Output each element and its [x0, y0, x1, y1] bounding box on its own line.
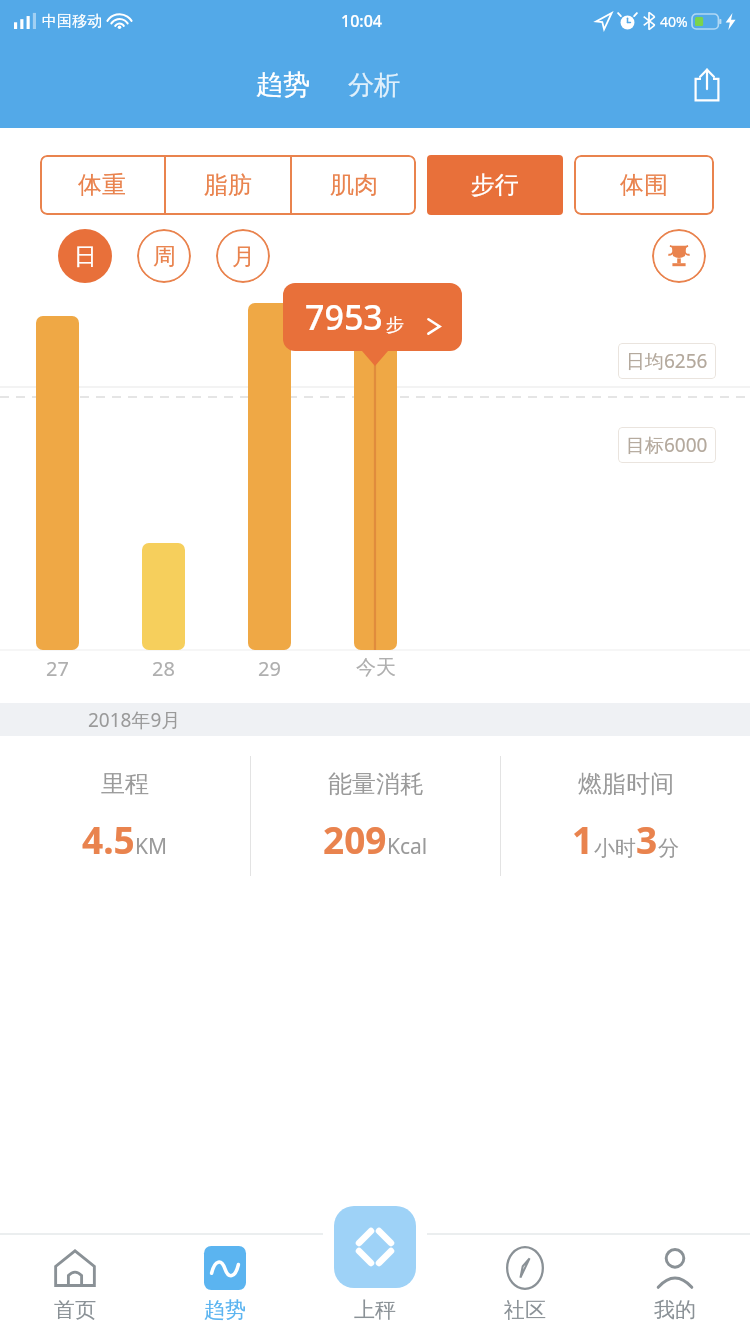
staticText: 月	[232, 242, 255, 271]
staticText: 首页	[54, 1297, 96, 1323]
button[interactable]: 分析	[342, 61, 406, 110]
button[interactable]: 体重	[40, 155, 164, 215]
staticText: 中国移动	[42, 12, 102, 31]
staticText: KM	[135, 832, 168, 861]
staticText: 燃脂时间	[578, 769, 674, 799]
button[interactable]: 月	[216, 229, 270, 283]
button[interactable]: 脂肪	[166, 155, 290, 215]
staticText: 趋势	[256, 68, 310, 102]
staticText: 肌肉	[330, 170, 378, 200]
button[interactable]: 里程	[0, 736, 250, 896]
staticText: 小时	[594, 835, 636, 861]
staticText: 40%	[660, 12, 688, 31]
button[interactable]: 趋势	[150, 1234, 300, 1334]
staticText: 目标6000	[626, 432, 708, 458]
staticText: 社区	[504, 1297, 546, 1323]
staticText: 日	[74, 242, 97, 271]
button[interactable]: 7953	[283, 283, 462, 351]
staticText: 7953	[305, 294, 383, 340]
button[interactable]: 首页	[0, 1234, 150, 1334]
button[interactable]: 肌肉	[292, 155, 416, 215]
button[interactable]: 周	[137, 229, 191, 283]
button[interactable]: 趋势	[250, 60, 316, 110]
staticText: 29	[258, 655, 281, 682]
staticText: 4.5	[82, 814, 135, 864]
button[interactable]: 体围	[574, 155, 714, 215]
staticText: 今天	[356, 655, 396, 680]
staticText: 脂肪	[204, 170, 252, 200]
staticText: 里程	[101, 769, 149, 799]
button[interactable]: Share	[678, 56, 736, 114]
staticText: 209	[323, 814, 387, 864]
staticText: Kcal	[387, 832, 428, 861]
staticText: 周	[153, 242, 176, 271]
button[interactable]: 燃脂时间	[501, 736, 750, 896]
button[interactable]: 日	[58, 229, 112, 283]
staticText: 2018年9月	[88, 707, 181, 733]
staticText: 27	[46, 655, 69, 682]
button[interactable]: 社区	[450, 1234, 600, 1334]
button[interactable]: 能量消耗	[251, 736, 500, 896]
staticText: 分析	[348, 69, 400, 102]
staticText: 分	[658, 835, 679, 861]
staticText: 3	[636, 814, 658, 864]
staticText: 28	[152, 655, 175, 682]
staticText: 10:04	[341, 10, 382, 32]
staticText: 步行	[471, 170, 519, 200]
staticText: 体围	[620, 170, 668, 200]
staticText: 1	[572, 814, 594, 864]
button[interactable]: Weigh in	[334, 1206, 416, 1288]
staticText: 上秤	[354, 1297, 396, 1323]
button[interactable]: 我的	[600, 1234, 750, 1334]
staticText: 能量消耗	[328, 769, 424, 799]
button[interactable]: Achievements	[652, 229, 706, 283]
button[interactable]: 上秤	[300, 1234, 450, 1334]
staticText: 日均6256	[626, 348, 708, 374]
staticText: 我的	[654, 1297, 696, 1323]
button[interactable]: 步行	[427, 155, 563, 215]
staticText: 趋势	[204, 1297, 246, 1323]
staticText: 体重	[78, 170, 126, 200]
staticText: 步	[386, 314, 404, 337]
